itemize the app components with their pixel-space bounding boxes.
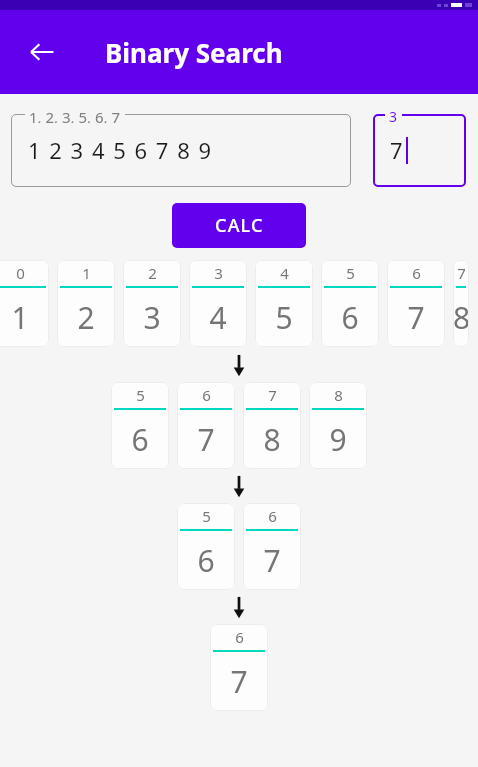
button[interactable]: 1 (57, 260, 115, 347)
button[interactable]: 2 (123, 260, 181, 347)
staticText: 6 (202, 385, 211, 405)
button[interactable]: 1, 2, 3, 5, 6, 7 (11, 106, 351, 187)
button[interactable]: 6 (210, 624, 268, 711)
button[interactable]: CALC (172, 203, 306, 248)
button[interactable]: 4 (255, 260, 313, 347)
staticText: 5 (136, 385, 145, 405)
staticText: 8 (453, 297, 469, 338)
staticText: CALC (215, 213, 264, 238)
staticText: 7 (197, 419, 215, 460)
staticText: 1 2 3 4 5 6 7 8 9 (28, 135, 213, 165)
button[interactable]: 6 (243, 503, 301, 590)
staticText: 3 (143, 297, 161, 338)
staticText: 7 (263, 540, 281, 581)
staticText: 6 (412, 263, 421, 283)
staticText: 8 (334, 385, 343, 405)
staticText: Binary Search (105, 35, 283, 70)
staticText: 7 (407, 297, 425, 338)
button[interactable]: 0 (0, 260, 49, 347)
staticText: 6 (131, 419, 149, 460)
staticText: 4 (209, 297, 227, 338)
button[interactable]: Back (18, 28, 66, 76)
staticText: 6 (197, 540, 215, 581)
staticText: 7 (230, 661, 248, 702)
button[interactable]: 5 (111, 382, 169, 469)
staticText: 6 (341, 297, 359, 338)
button[interactable]: 8 (309, 382, 367, 469)
staticText: 3 (389, 107, 398, 123)
staticText: 1 (11, 297, 29, 338)
staticText: 2 (77, 297, 95, 338)
button[interactable]: 6 (177, 382, 235, 469)
staticText: 5 (202, 506, 211, 526)
button[interactable]: 7 (243, 382, 301, 469)
staticText: 4 (280, 263, 289, 283)
button[interactable]: 7 (453, 260, 469, 347)
staticText: 2 (148, 263, 157, 283)
button[interactable]: 6 (387, 260, 445, 347)
staticText: 5 (346, 263, 355, 283)
button[interactable]: 5 (321, 260, 379, 347)
staticText: 5 (275, 297, 293, 338)
staticText: 1 (82, 263, 91, 283)
button[interactable]: 5 (177, 503, 235, 590)
staticText: 7 (457, 263, 466, 283)
staticText: 6 (235, 627, 244, 647)
staticText: 1, 2, 3, 5, 6, 7 (29, 107, 121, 123)
staticText: 8 (263, 419, 281, 460)
staticText: 3 (214, 263, 223, 283)
staticText: 0 (16, 263, 25, 283)
staticText: 9 (329, 419, 347, 460)
staticText: 6 (268, 506, 277, 526)
staticText: 7 (390, 135, 405, 165)
staticText: 7 (268, 385, 277, 405)
button[interactable]: 3 (373, 106, 466, 187)
button[interactable]: 3 (189, 260, 247, 347)
